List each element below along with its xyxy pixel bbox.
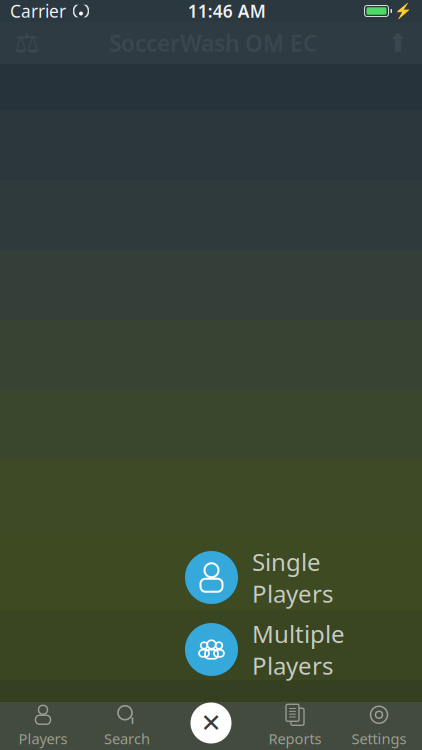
- staticText: Settings: [351, 729, 406, 748]
- staticText: Reports: [268, 729, 321, 748]
- staticText: Carrier: [10, 0, 66, 22]
- button[interactable]: Close: [187, 699, 235, 747]
- staticText: Search: [104, 729, 150, 748]
- staticText: Single Players: [252, 546, 333, 609]
- staticText: ⚡: [394, 3, 412, 19]
- button[interactable]: Multiple Players: [185, 623, 422, 676]
- button[interactable]: Reports: [253, 702, 337, 750]
- staticText: Players: [18, 729, 67, 748]
- staticText: 11:46 AM: [188, 0, 266, 22]
- staticText: SoccerWash OM EC: [109, 28, 317, 58]
- button[interactable]: Single Players: [185, 551, 422, 604]
- staticText: ✕: [200, 709, 221, 737]
- staticText: ⬆: [387, 29, 408, 57]
- button[interactable]: Players: [1, 702, 85, 750]
- staticText: Multiple Players: [252, 618, 345, 681]
- button[interactable]: Search: [85, 702, 169, 750]
- staticText: ⚖: [14, 27, 39, 59]
- button[interactable]: Settings: [337, 702, 421, 750]
